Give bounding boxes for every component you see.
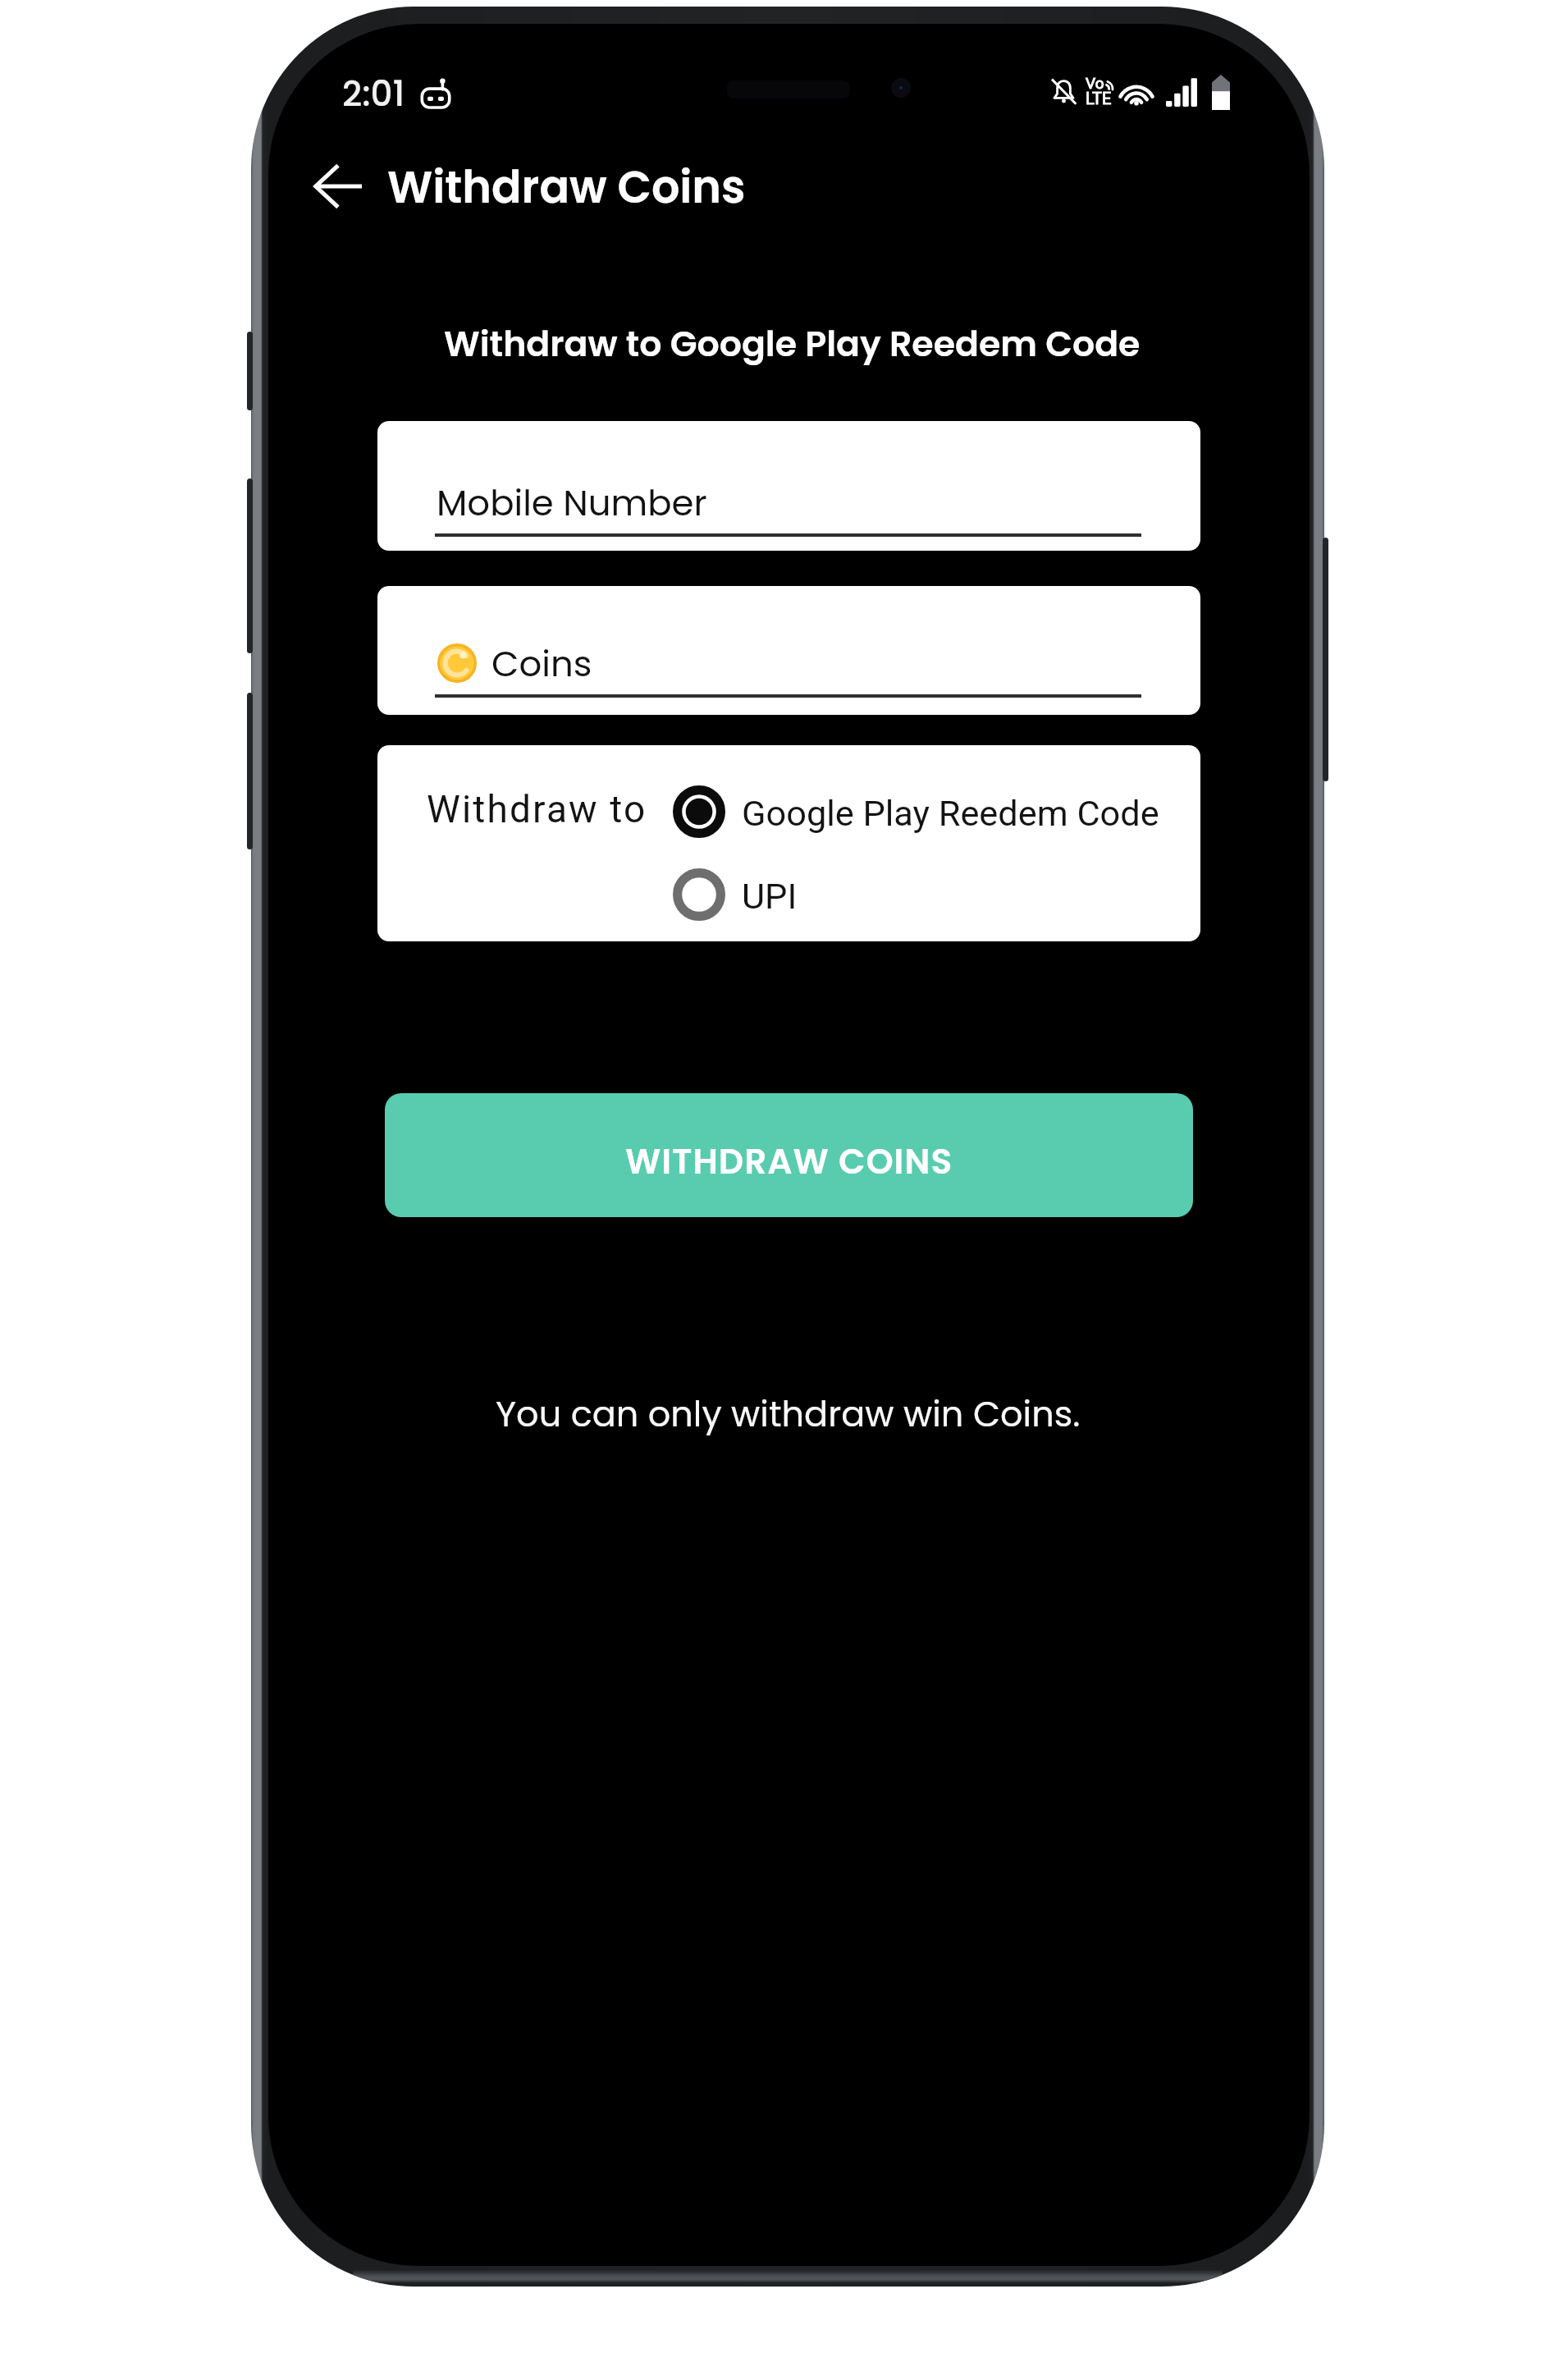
- staticText: 2:01: [342, 70, 405, 118]
- staticText: Vo: [1086, 74, 1104, 92]
- staticText: WITHDRAW COINS: [625, 1138, 953, 1186]
- staticText: LTE: [1086, 89, 1112, 108]
- staticText: Withdraw Coins: [387, 156, 746, 218]
- button[interactable]: Back: [292, 140, 384, 232]
- staticText: UPI: [742, 876, 798, 918]
- staticText: Withdraw to Google Play Reedem Code: [444, 319, 1141, 369]
- staticText: Mobile Number: [437, 478, 707, 528]
- staticText: You can only withdraw win Coins.: [496, 1389, 1081, 1439]
- staticText: Coins: [491, 639, 592, 689]
- staticText: Google Play Reedem Code: [742, 793, 1159, 835]
- button[interactable]: UPI: [673, 868, 1141, 921]
- button[interactable]: Google Play Reedem Code: [673, 785, 1141, 838]
- button[interactable]: WITHDRAW COINS: [385, 1093, 1193, 1217]
- staticText: Withdraw to: [427, 787, 647, 831]
